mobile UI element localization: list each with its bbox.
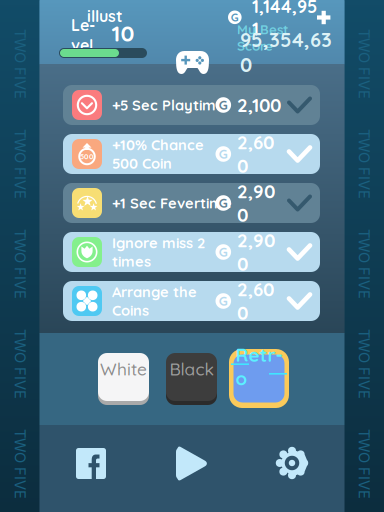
staticText: Retro (235, 343, 282, 390)
staticText: TWO FIVE (329, 455, 384, 473)
staticText: 1,144,951 (252, 0, 317, 40)
staticText: TWO FIVE (329, 355, 384, 373)
staticText: illust (87, 6, 123, 26)
staticText: TWO FIVE (329, 255, 384, 273)
staticText: Arrange the Coins (112, 283, 197, 319)
staticText: 95,354,630 (240, 27, 332, 77)
staticText: +5 Sec Playtime (112, 96, 225, 114)
staticText: TWO FIVE (0, 255, 55, 273)
staticText: G (231, 10, 239, 24)
staticText: 2,900 (237, 229, 275, 275)
staticText: 2,900 (237, 180, 275, 226)
staticText: 2,600 (237, 278, 274, 324)
button[interactable]: Buy coins (0, 0, 384, 512)
button[interactable]: Arrange the Coins (0, 0, 384, 512)
button[interactable]: Play (0, 0, 384, 512)
staticText: TWO FIVE (0, 455, 55, 473)
button[interactable]: Ignore miss 2 times (0, 0, 384, 512)
staticText: +10% Chance 500 Coin (112, 136, 204, 172)
staticText: G (219, 195, 228, 211)
staticText: Black (169, 358, 213, 380)
staticText: TWO FIVE (329, 55, 384, 73)
staticText: TWO FIVE (0, 355, 55, 373)
staticText: 500 (80, 152, 94, 161)
staticText: TWO FIVE (0, 55, 55, 73)
staticText: 2,100 (237, 93, 281, 117)
button[interactable]: Black (0, 0, 384, 512)
staticText: 10 (111, 19, 134, 47)
staticText: G (219, 244, 228, 260)
button[interactable]: White (0, 0, 384, 512)
staticText: 2,600 (237, 131, 274, 177)
staticText: +1 Sec Fevertime (112, 194, 232, 212)
button[interactable]: 500 (0, 0, 384, 512)
staticText: G (219, 146, 228, 162)
button[interactable]: +5 Sec Playtime (0, 0, 384, 512)
staticText: My Best Score (237, 21, 288, 54)
button[interactable]: Settings (0, 0, 384, 512)
staticText: G (219, 293, 228, 309)
button[interactable]: Retro (0, 0, 384, 512)
staticText: Level (71, 15, 95, 55)
button[interactable]: +1 Sec Fevertime (0, 0, 384, 512)
button[interactable]: Facebook (0, 0, 384, 512)
staticText: G (219, 97, 228, 113)
staticText: TWO FIVE (329, 155, 384, 173)
staticText: Ignore miss 2 times (112, 234, 205, 270)
staticText: TWO FIVE (0, 155, 55, 173)
staticText: White (100, 358, 147, 380)
